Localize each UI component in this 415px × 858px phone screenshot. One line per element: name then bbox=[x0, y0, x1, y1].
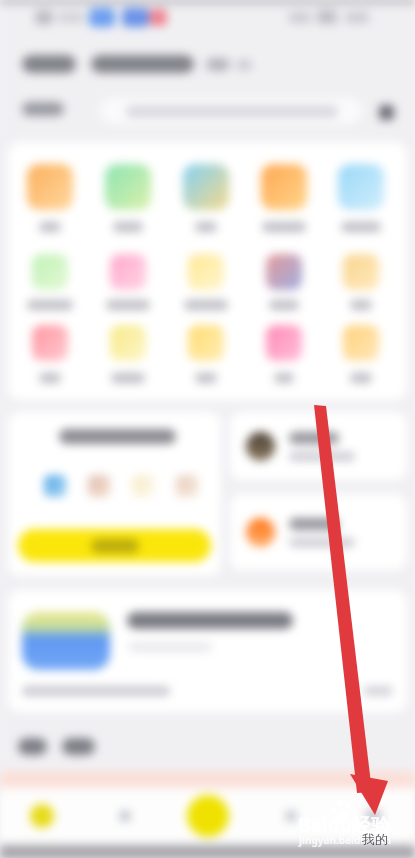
staticText: 我的 bbox=[362, 831, 388, 847]
button[interactable] bbox=[16, 254, 84, 310]
staticText: jingyan.baidu.com bbox=[299, 833, 391, 847]
button[interactable] bbox=[250, 254, 318, 310]
button[interactable] bbox=[8, 412, 221, 576]
button[interactable] bbox=[100, 98, 362, 124]
button[interactable] bbox=[327, 164, 395, 232]
button[interactable] bbox=[16, 164, 84, 232]
button[interactable] bbox=[94, 325, 162, 383]
staticText: Baidu经验 bbox=[298, 812, 391, 838]
button[interactable] bbox=[94, 164, 162, 232]
button[interactable] bbox=[172, 325, 240, 383]
button[interactable] bbox=[18, 529, 211, 562]
button[interactable]: Scan bbox=[375, 101, 398, 124]
button[interactable]: Category bbox=[83, 788, 166, 844]
button[interactable] bbox=[230, 412, 407, 480]
button[interactable] bbox=[94, 254, 162, 310]
button[interactable] bbox=[8, 590, 407, 712]
button[interactable] bbox=[16, 325, 84, 383]
button[interactable] bbox=[250, 164, 318, 232]
button[interactable] bbox=[230, 494, 407, 570]
button[interactable]: Home bbox=[0, 788, 83, 844]
button[interactable] bbox=[327, 325, 395, 383]
button[interactable] bbox=[172, 254, 240, 310]
button[interactable] bbox=[172, 164, 240, 232]
button[interactable] bbox=[250, 325, 318, 383]
button[interactable]: Message bbox=[249, 788, 332, 844]
button[interactable] bbox=[327, 254, 395, 310]
button[interactable]: Mine bbox=[332, 788, 415, 844]
button[interactable]: Cart bbox=[166, 788, 249, 844]
